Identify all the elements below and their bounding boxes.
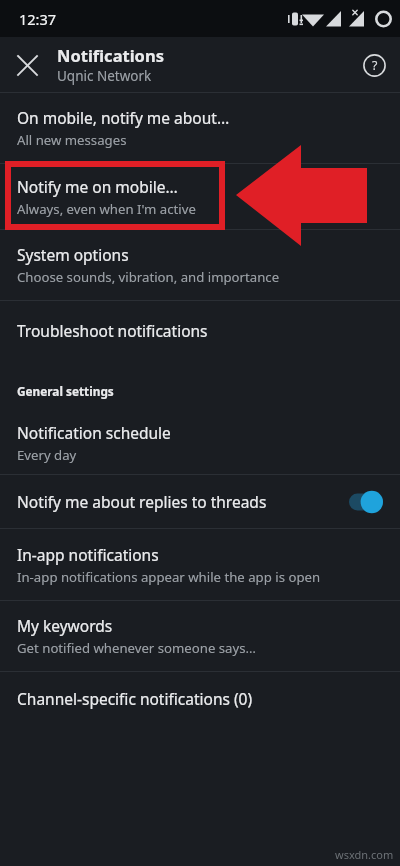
staticText: Every day <box>17 446 77 464</box>
staticText: All new messages <box>17 131 127 149</box>
staticText: On mobile, notify me about… <box>17 107 230 128</box>
button[interactable]: Toggle replies to threads <box>346 487 386 517</box>
staticText: Notifications <box>57 44 164 66</box>
staticText: 12:37 <box>19 9 57 29</box>
staticText: ? <box>372 57 378 74</box>
button[interactable]: Notification schedule <box>0 412 400 474</box>
staticText: Channel-specific notifications (0) <box>17 688 253 709</box>
button[interactable]: Notify me on mobile… <box>0 164 400 229</box>
staticText: Notification schedule <box>17 422 171 443</box>
staticText: Uqnic Network <box>57 67 152 85</box>
staticText: In-app notifications <box>17 544 159 565</box>
staticText: My keywords <box>17 615 113 636</box>
staticText: Troubleshoot notifications <box>17 320 208 341</box>
staticText: Get notified whenever someone says… <box>17 639 256 657</box>
button[interactable]: Help <box>355 46 393 84</box>
button[interactable]: On mobile, notify me about… <box>0 93 400 163</box>
button[interactable]: In-app notifications <box>0 529 400 600</box>
staticText: General settings <box>17 383 114 399</box>
staticText: Notify me on mobile… <box>17 176 178 197</box>
button[interactable]: My keywords <box>0 601 400 671</box>
button[interactable]: Troubleshoot notifications <box>0 301 400 359</box>
staticText: Always, even when I'm active <box>17 200 196 218</box>
staticText: System options <box>17 244 129 265</box>
staticText: Choose sounds, vibration, and importance <box>17 268 280 286</box>
button[interactable]: Notify me about replies to threads <box>0 475 400 528</box>
staticText: wsxdn.com <box>335 847 394 862</box>
button[interactable]: System options <box>0 230 400 300</box>
staticText: Notify me about replies to threads <box>17 491 267 512</box>
button[interactable]: Channel-specific notifications (0) <box>0 672 400 724</box>
staticText: In-app notifications appear while the ap… <box>17 568 321 586</box>
button[interactable]: Close <box>8 46 46 84</box>
